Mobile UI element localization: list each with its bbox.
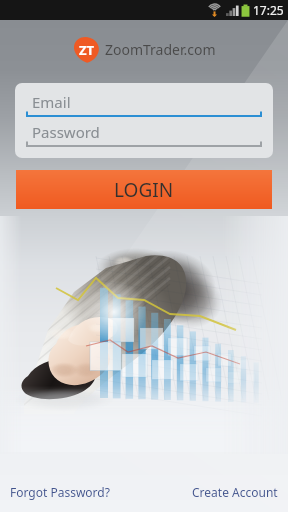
staticText: Create Account xyxy=(192,484,278,500)
button[interactable]: LOGIN xyxy=(16,170,272,209)
staticText: ZT xyxy=(79,41,95,59)
staticText: LOGIN xyxy=(114,177,174,203)
button[interactable]: Forgot Password? xyxy=(10,484,110,500)
staticText: 17:25 xyxy=(253,2,284,18)
staticText: Email xyxy=(32,92,71,112)
button[interactable]: Password xyxy=(26,122,262,147)
staticText: Password xyxy=(32,122,100,142)
staticText: ZoomTrader.com xyxy=(105,40,216,59)
staticText: Forgot Password? xyxy=(10,484,110,500)
button[interactable]: Create Account xyxy=(192,484,278,500)
button[interactable]: Email xyxy=(26,92,262,117)
